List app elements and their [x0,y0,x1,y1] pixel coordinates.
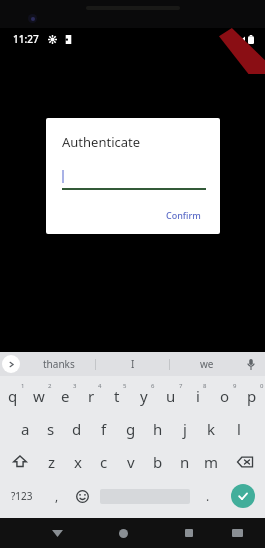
staticText: w [33,386,45,406]
button[interactable]: v [117,445,144,478]
button[interactable]: h [144,412,171,445]
button[interactable]: Switch keyboard [224,520,250,546]
staticText: 4 [98,382,102,390]
staticText: a [21,419,30,439]
staticText: Confirm [166,209,201,221]
button[interactable]: g [117,412,144,445]
staticText: 1 [21,382,25,390]
button[interactable]: t [104,379,130,412]
button[interactable]: ?123 [0,478,44,514]
button[interactable]: y [130,379,157,412]
button[interactable]: o [211,379,238,412]
button[interactable]: we [170,352,243,376]
button[interactable]: p [238,379,265,412]
button[interactable]: Home [110,520,136,546]
staticText: 7 [179,382,183,390]
staticText: i [196,386,200,406]
staticText: k [207,419,216,439]
button[interactable]: i [184,379,211,412]
button[interactable] [62,166,206,190]
button[interactable]: Space [96,478,194,514]
staticText: p [247,386,257,406]
staticText: Authenticate [62,133,141,151]
button[interactable]: Backspace [225,445,265,478]
staticText: thanks [43,357,75,371]
button[interactable]: Enter [221,478,265,514]
staticText: 6 [151,382,155,390]
button[interactable]: s [38,412,64,445]
staticText: . [206,488,210,504]
staticText: b [153,452,163,472]
staticText: 3 [73,382,77,390]
staticText: j [183,419,187,439]
staticText: o [220,386,230,406]
staticText: ?123 [11,489,33,503]
button[interactable]: Emoji [69,478,96,514]
button[interactable]: e [52,379,78,412]
staticText: n [180,452,190,472]
staticText: v [127,452,135,472]
button[interactable]: thanks [22,352,95,376]
button[interactable]: j [171,412,198,445]
button[interactable]: r [78,379,104,412]
button[interactable]: a [12,412,38,445]
staticText: h [153,419,163,439]
staticText: 9 [233,382,237,390]
button[interactable]: Voice input [242,355,260,373]
button[interactable]: z [39,445,65,478]
button[interactable]: w [26,379,52,412]
staticText: 8 [203,382,207,390]
button[interactable]: c [91,445,117,478]
staticText: c [100,452,108,472]
staticText: y [140,386,148,406]
staticText: u [166,386,176,406]
button[interactable]: l [225,412,252,445]
staticText: q [8,386,18,406]
button[interactable]: q [0,379,26,412]
button[interactable]: x [65,445,91,478]
button[interactable]: Confirm [161,206,206,224]
staticText: x [74,452,82,472]
staticText: m [204,452,219,472]
staticText: 11:27 [13,32,39,46]
staticText: d [72,419,82,439]
staticText: I [131,357,135,371]
staticText: 0 [260,382,264,390]
button[interactable]: b [144,445,171,478]
button[interactable]: f [90,412,117,445]
button[interactable]: . [194,478,221,514]
button[interactable]: Back [44,520,70,546]
button[interactable]: I [96,352,169,376]
button[interactable]: Shift [0,445,39,478]
staticText: g [126,419,136,439]
staticText: we [200,357,214,371]
button[interactable]: More suggestions [2,355,20,373]
staticText: l [237,419,241,439]
button[interactable]: d [64,412,90,445]
button[interactable]: n [171,445,198,478]
button[interactable]: u [157,379,184,412]
staticText: e [61,386,70,406]
button[interactable]: Recent apps [176,520,202,546]
button[interactable]: , [44,478,69,514]
staticText: r [88,386,95,406]
staticText: t [114,386,120,406]
button[interactable]: k [198,412,225,445]
staticText: 2 [48,382,52,390]
staticText: 5 [123,382,127,390]
button[interactable]: m [198,445,225,478]
staticText: f [101,419,107,439]
staticText: , [55,488,59,504]
staticText: z [48,452,56,472]
staticText: s [47,419,55,439]
